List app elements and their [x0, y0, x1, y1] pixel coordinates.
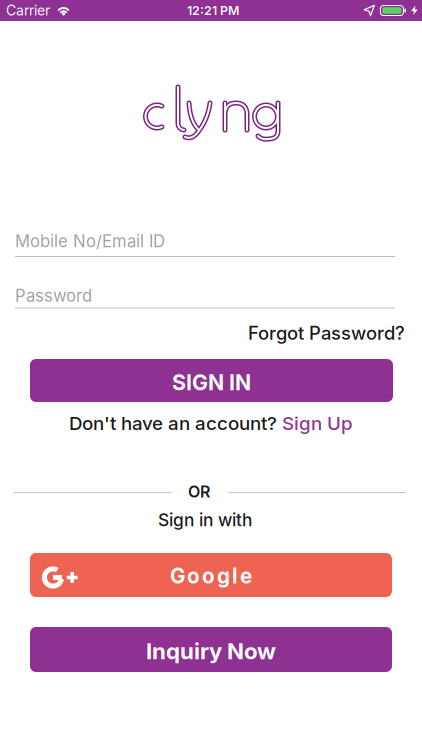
staticText: Inquiry Now [146, 637, 276, 664]
staticText: G o o g l e [170, 563, 252, 588]
button[interactable]: Inquiry Now [30, 627, 392, 672]
staticText: 12:21 PM [187, 3, 239, 18]
staticText: Sign Up [282, 412, 353, 435]
staticText: OR [188, 482, 210, 501]
button[interactable]: Mobile No/Email ID [15, 231, 395, 257]
staticText: Forgot Password? [248, 322, 405, 344]
button[interactable]: Password [15, 285, 395, 308]
staticText: Password [15, 285, 92, 306]
button[interactable]: Forgot Password? [248, 322, 405, 344]
button[interactable]: G o o g l e [30, 553, 392, 597]
staticText: Carrier [6, 2, 50, 19]
button[interactable]: SIGN IN [30, 359, 393, 402]
staticText: Don't have an account? [69, 412, 282, 435]
button[interactable]: Sign Up [282, 412, 353, 435]
staticText: Sign in with [158, 509, 252, 530]
staticText: SIGN IN [172, 370, 251, 395]
staticText: Mobile No/Email ID [15, 231, 165, 251]
